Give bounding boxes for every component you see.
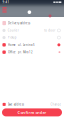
- staticText: Delivery address: [8, 21, 30, 25]
- button[interactable]: Office pr. Mira 12: [0, 49, 64, 56]
- staticText: to door: [44, 29, 55, 32]
- button[interactable]: Courier: [0, 27, 64, 34]
- button[interactable]: Delivery address: [0, 19, 64, 27]
- staticText: Change: [50, 103, 61, 106]
- button[interactable]: Pickup: [0, 34, 64, 41]
- button[interactable]: Menu: [2, 7, 7, 12]
- staticText: 9:41: [3, 0, 10, 4]
- staticText: Home ul. Lenina 5: [8, 43, 35, 47]
- button[interactable]: Confirm order: [2, 108, 62, 116]
- staticText: Pickup: [8, 36, 17, 39]
- staticText: Confirm order: [17, 110, 46, 115]
- button[interactable]: Home ul. Lenina 5: [0, 41, 64, 49]
- staticText: Office pr. Mira 12: [8, 50, 33, 54]
- staticText: Save address: [8, 103, 24, 106]
- staticText: Courier: [8, 29, 19, 32]
- button[interactable]: Save address: [0, 100, 64, 108]
